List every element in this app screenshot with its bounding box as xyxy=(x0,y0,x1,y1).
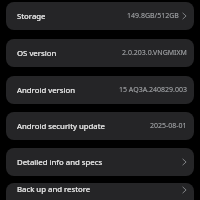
button[interactable]: Storage xyxy=(6,2,194,30)
staticText: Back up and restore xyxy=(17,184,91,195)
staticText: Detailed info and specs xyxy=(17,157,103,168)
button[interactable]: Back up and restore xyxy=(6,183,194,200)
staticText: Android security update xyxy=(17,121,105,132)
staticText: 2025-08-01 xyxy=(150,121,187,131)
staticText: 2.0.203.0.VNGMIXM xyxy=(122,48,187,58)
button[interactable]: Detailed info and specs xyxy=(6,148,194,176)
staticText: Android version xyxy=(17,85,76,96)
staticText: 15 AQ3A.240829.003 xyxy=(119,85,187,95)
staticText: 149.8GB/512GB xyxy=(127,11,179,21)
button[interactable]: OS version xyxy=(6,39,194,67)
staticText: OS version xyxy=(17,48,57,59)
button[interactable]: Android security update xyxy=(6,112,194,140)
button[interactable]: Android version xyxy=(6,76,194,104)
staticText: Storage xyxy=(17,11,46,22)
